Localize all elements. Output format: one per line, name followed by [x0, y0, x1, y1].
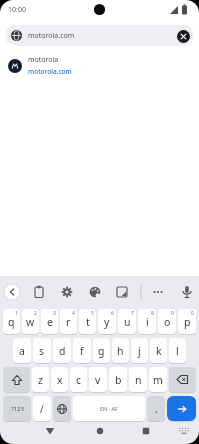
staticText: . — [155, 402, 158, 416]
button[interactable]: g — [93, 338, 110, 363]
staticText: t — [86, 315, 90, 329]
staticText: 4 — [72, 310, 75, 317]
button[interactable]: h — [112, 338, 129, 363]
staticText: 1 — [15, 310, 18, 317]
button[interactable] — [111, 281, 133, 303]
staticText: c — [76, 373, 82, 387]
button[interactable]: i — [138, 309, 156, 334]
button[interactable]: v — [89, 367, 107, 392]
staticText: u — [124, 315, 131, 329]
staticText: s — [39, 344, 45, 358]
button[interactable]: q — [3, 309, 20, 334]
staticText: 7 — [131, 310, 134, 317]
staticText: 5 — [91, 310, 94, 317]
button[interactable]: . — [147, 396, 165, 421]
staticText: o — [164, 315, 171, 329]
staticText: p — [184, 315, 191, 329]
staticText: 2 — [34, 310, 37, 317]
button[interactable] — [84, 281, 106, 303]
staticText: m — [153, 373, 163, 387]
button[interactable] — [90, 421, 110, 441]
staticText: a — [19, 344, 25, 358]
staticText: e — [47, 315, 53, 329]
button[interactable]: k — [150, 338, 167, 363]
staticText: i — [146, 315, 149, 329]
staticText: 0 — [191, 310, 194, 317]
staticText: h — [117, 344, 124, 358]
button[interactable]: m — [149, 367, 167, 392]
button[interactable]: c — [70, 367, 87, 392]
button[interactable] — [147, 281, 169, 303]
button[interactable]: motorola.com — [5, 25, 194, 46]
button[interactable]: e — [41, 309, 58, 334]
button[interactable] — [174, 421, 194, 441]
staticText: 8 — [151, 310, 154, 317]
staticText: motorola.com — [28, 31, 75, 41]
button[interactable]: ?123 — [3, 396, 31, 421]
staticText: y — [104, 315, 110, 329]
staticText: motorola.com — [28, 67, 72, 76]
button[interactable]: a — [13, 338, 31, 363]
button[interactable]: b — [109, 367, 127, 392]
button[interactable] — [167, 396, 196, 421]
button[interactable] — [136, 421, 156, 441]
staticText: r — [66, 315, 71, 329]
button[interactable]: d — [53, 338, 71, 363]
staticText: / — [40, 402, 44, 416]
button[interactable]: o — [158, 309, 176, 334]
staticText: 6 — [111, 310, 114, 317]
button[interactable] — [1, 281, 23, 303]
button[interactable] — [53, 396, 71, 421]
button[interactable] — [176, 281, 198, 303]
staticText: ?123 — [11, 405, 24, 413]
button[interactable] — [40, 421, 60, 441]
staticText: d — [59, 344, 66, 358]
staticText: x — [57, 373, 63, 387]
button[interactable] — [28, 281, 50, 303]
button[interactable]: EN · AF — [73, 396, 145, 421]
staticText: EN · AF — [100, 405, 118, 412]
button[interactable] — [3, 367, 30, 392]
button[interactable]: r — [60, 309, 77, 334]
button[interactable]: u — [118, 309, 136, 334]
button[interactable]: x — [51, 367, 68, 392]
staticText: v — [95, 373, 101, 387]
staticText: z — [38, 373, 43, 387]
button[interactable]: z — [32, 367, 49, 392]
button[interactable]: motorola — [0, 46, 199, 83]
staticText: g — [98, 344, 105, 358]
staticText: f — [80, 344, 84, 358]
button[interactable] — [56, 281, 78, 303]
staticText: b — [115, 373, 122, 387]
button[interactable]: y — [98, 309, 116, 334]
staticText: q — [8, 315, 15, 329]
staticText: 3 — [53, 310, 56, 317]
staticText: k — [156, 344, 162, 358]
button[interactable]: s — [33, 338, 51, 363]
staticText: n — [135, 373, 142, 387]
staticText: j — [138, 344, 141, 358]
staticText: 10:00 — [8, 5, 26, 15]
button[interactable]: l — [169, 338, 186, 363]
button[interactable] — [169, 367, 196, 392]
button[interactable]: j — [131, 338, 148, 363]
button[interactable]: w — [22, 309, 39, 334]
staticText: motorola — [28, 55, 59, 65]
staticText: l — [176, 344, 179, 358]
staticText: 9 — [171, 310, 174, 317]
button[interactable]: f — [73, 338, 91, 363]
button[interactable]: n — [129, 367, 147, 392]
staticText: w — [26, 315, 35, 329]
button[interactable]: t — [79, 309, 96, 334]
button[interactable] — [176, 29, 190, 43]
button[interactable]: p — [178, 309, 196, 334]
button[interactable]: / — [33, 396, 51, 421]
